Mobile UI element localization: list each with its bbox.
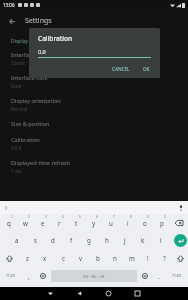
- staticText: k: [141, 236, 145, 244]
- button[interactable]: a: [8, 231, 26, 249]
- staticText: 1: [11, 215, 13, 219]
- button[interactable]: y: [85, 214, 102, 231]
- button[interactable]: ,: [22, 267, 36, 285]
- staticText: n: [113, 254, 117, 262]
- staticText: q: [7, 219, 11, 227]
- button[interactable]: p: [153, 214, 170, 231]
- button[interactable]: Calibration: [0, 132, 188, 155]
- staticText: e: [41, 219, 45, 227]
- button[interactable]: Shift: [172, 249, 188, 267]
- staticText: s: [34, 236, 37, 244]
- button[interactable]: m: [123, 249, 140, 267]
- button[interactable]: Back: [0, 10, 188, 32]
- button[interactable]: !: [140, 249, 156, 267]
- button[interactable]: Home: [103, 288, 114, 299]
- staticText: 3: [45, 215, 47, 219]
- staticText: ?123: [172, 273, 182, 279]
- staticText: Interface look: [11, 74, 48, 82]
- button[interactable]: Expand suggestions: [2, 204, 10, 212]
- button[interactable]: Hide keyboard: [45, 288, 56, 299]
- button[interactable]: Settings: [138, 267, 152, 285]
- staticText: ?: [163, 254, 166, 262]
- button[interactable]: Interface look: [0, 70, 188, 93]
- button[interactable]: ?: [156, 249, 172, 267]
- staticText: f: [70, 236, 73, 244]
- button[interactable]: Recents: [132, 288, 143, 299]
- staticText: u: [109, 219, 113, 227]
- staticText: Settings: [25, 16, 52, 26]
- staticText: 0: [164, 215, 166, 219]
- button[interactable]: w: [17, 214, 34, 231]
- button[interactable]: Emoji: [36, 267, 50, 285]
- button[interactable]: f: [62, 231, 80, 249]
- staticText: Dark: [11, 83, 22, 89]
- button[interactable]: h: [98, 231, 116, 249]
- button[interactable]: e: [34, 214, 51, 231]
- button[interactable]: ?123: [166, 267, 188, 285]
- staticText: Display orientation: [11, 97, 61, 105]
- button[interactable]: Voice input: [177, 204, 185, 212]
- button[interactable]: Backspace: [170, 214, 188, 231]
- staticText: ?123: [6, 273, 16, 279]
- staticText: o: [143, 219, 147, 227]
- staticText: Calibration: [38, 34, 73, 43]
- staticText: l: [160, 236, 162, 244]
- staticText: .: [158, 272, 160, 280]
- button[interactable]: v: [72, 249, 89, 267]
- staticText: 13:06: [3, 2, 15, 8]
- staticText: 1 sec: [11, 168, 22, 174]
- staticText: Display: [11, 38, 29, 45]
- staticText: z: [26, 254, 29, 262]
- button[interactable]: OK: [139, 64, 154, 74]
- button[interactable]: Enter: [174, 234, 187, 247]
- staticText: p: [160, 219, 164, 227]
- button[interactable]: Displayed time refresh: [0, 155, 188, 178]
- staticText: r: [58, 219, 61, 227]
- staticText: 5: [79, 215, 81, 219]
- button[interactable]: Display orientation: [0, 93, 188, 116]
- button[interactable]: u: [102, 214, 119, 231]
- staticText: i: [127, 219, 129, 227]
- button[interactable]: z: [18, 249, 36, 267]
- staticText: Calibration: [11, 136, 40, 144]
- button[interactable]: r: [51, 214, 68, 231]
- staticText: EN • BG • SR: [83, 274, 105, 279]
- button[interactable]: .: [152, 267, 166, 285]
- button[interactable]: i: [119, 214, 136, 231]
- button[interactable]: g: [80, 231, 98, 249]
- button[interactable]: Shift: [0, 249, 18, 267]
- button[interactable]: ?123: [0, 267, 22, 285]
- button[interactable]: o: [136, 214, 153, 231]
- button[interactable]: EN • BG • SR: [51, 270, 137, 282]
- staticText: h: [105, 236, 109, 244]
- button[interactable]: s: [26, 231, 44, 249]
- staticText: v: [79, 254, 83, 262]
- staticText: d: [51, 236, 55, 244]
- button[interactable]: x: [36, 249, 54, 267]
- staticText: a: [15, 236, 19, 244]
- button[interactable]: n: [106, 249, 123, 267]
- button[interactable]: Back: [74, 288, 85, 299]
- button[interactable]: j: [116, 231, 134, 249]
- button[interactable]: k: [134, 231, 152, 249]
- staticText: CANCEL: [112, 66, 130, 72]
- button[interactable]: c: [54, 249, 72, 267]
- staticText: OK: [143, 66, 150, 72]
- staticText: Interface style: [11, 51, 49, 59]
- staticText: c: [62, 254, 65, 262]
- button[interactable]: Size & position: [0, 116, 188, 132]
- button[interactable]: Interface style: [0, 47, 188, 70]
- staticText: Size & position: [11, 120, 50, 128]
- button[interactable]: Back: [5, 14, 19, 28]
- button[interactable]: l: [152, 231, 170, 249]
- button[interactable]: CANCEL: [108, 64, 134, 74]
- staticText: t: [75, 219, 78, 227]
- button[interactable]: q: [0, 214, 17, 231]
- button[interactable]: b: [89, 249, 106, 267]
- staticText: 2: [28, 215, 30, 219]
- staticText: 7: [113, 215, 115, 219]
- staticText: g: [87, 236, 91, 244]
- button[interactable]: t: [68, 214, 85, 231]
- button[interactable]: d: [44, 231, 62, 249]
- staticText: m: [129, 254, 135, 262]
